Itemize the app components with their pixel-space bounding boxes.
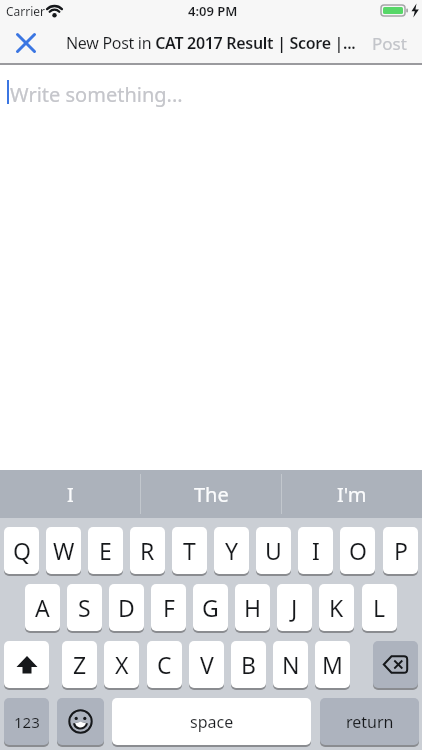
button[interactable]: B — [231, 641, 266, 688]
staticText: I — [312, 535, 320, 566]
staticText: S — [78, 592, 91, 623]
button[interactable]: 123 — [4, 698, 49, 745]
staticText: Q — [13, 535, 31, 566]
staticText: G — [202, 592, 219, 623]
button[interactable]: I — [298, 527, 333, 574]
staticText: N — [282, 649, 300, 680]
button[interactable]: The — [141, 470, 282, 518]
staticText: X — [115, 649, 129, 680]
button[interactable]: M — [315, 641, 350, 688]
staticText: D — [118, 592, 135, 623]
button[interactable] — [10, 27, 42, 59]
button[interactable]: D — [109, 584, 144, 631]
button[interactable]: J — [277, 584, 312, 631]
button[interactable]: V — [189, 641, 224, 688]
button[interactable] — [0, 65, 422, 470]
staticText: Write something... — [10, 81, 183, 108]
staticText: M — [322, 649, 343, 680]
button[interactable]: I — [0, 470, 141, 518]
staticText: Carrier — [6, 3, 46, 19]
button[interactable]: U — [256, 527, 291, 574]
staticText: Z — [73, 649, 87, 680]
staticText: V — [200, 649, 214, 680]
button[interactable]: P — [383, 527, 418, 574]
button[interactable]: F — [151, 584, 186, 631]
button[interactable]: W — [46, 527, 81, 574]
staticText: 123 — [14, 712, 40, 732]
button[interactable] — [57, 698, 104, 745]
button[interactable]: T — [172, 527, 207, 574]
button[interactable]: A — [25, 584, 60, 631]
button[interactable]: return — [320, 698, 419, 745]
staticText: T — [183, 535, 196, 566]
staticText: U — [265, 535, 282, 566]
staticText: B — [241, 649, 256, 680]
button[interactable]: Q — [4, 527, 39, 574]
button[interactable]: L — [362, 584, 397, 631]
button[interactable]: N — [273, 641, 308, 688]
staticText: L — [373, 592, 386, 623]
button[interactable]: G — [193, 584, 228, 631]
staticText: R — [140, 535, 155, 566]
staticText: C — [157, 649, 172, 680]
button[interactable]: E — [88, 527, 123, 574]
staticText: return — [346, 711, 394, 733]
staticText: space — [190, 711, 234, 733]
button[interactable]: Post — [363, 28, 415, 58]
button[interactable]: X — [104, 641, 139, 688]
staticText: Y — [225, 535, 239, 566]
staticText: P — [394, 535, 408, 566]
button[interactable]: K — [319, 584, 354, 631]
button[interactable]: O — [340, 527, 375, 574]
staticText: Post — [372, 32, 407, 55]
button[interactable]: S — [67, 584, 102, 631]
staticText: W — [53, 535, 75, 566]
staticText: H — [244, 592, 262, 623]
button[interactable]: Z — [62, 641, 97, 688]
button[interactable] — [4, 641, 49, 688]
staticText: I'm — [337, 481, 367, 508]
button[interactable]: H — [235, 584, 270, 631]
staticText: F — [163, 592, 175, 623]
staticText: The — [194, 481, 229, 508]
button[interactable]: space — [112, 698, 311, 745]
staticText: I — [67, 481, 74, 508]
staticText: E — [99, 535, 112, 566]
staticText: K — [329, 592, 344, 623]
staticText: New Post in CAT 2017 Result | Score |... — [66, 32, 356, 54]
button[interactable]: I'm — [281, 470, 422, 518]
button[interactable] — [373, 641, 418, 688]
button[interactable]: R — [130, 527, 165, 574]
staticText: O — [349, 535, 367, 566]
button[interactable]: Y — [214, 527, 249, 574]
button[interactable]: C — [147, 641, 182, 688]
staticText: A — [35, 592, 50, 623]
staticText: J — [291, 592, 298, 623]
staticText: 4:09 PM — [188, 2, 238, 20]
